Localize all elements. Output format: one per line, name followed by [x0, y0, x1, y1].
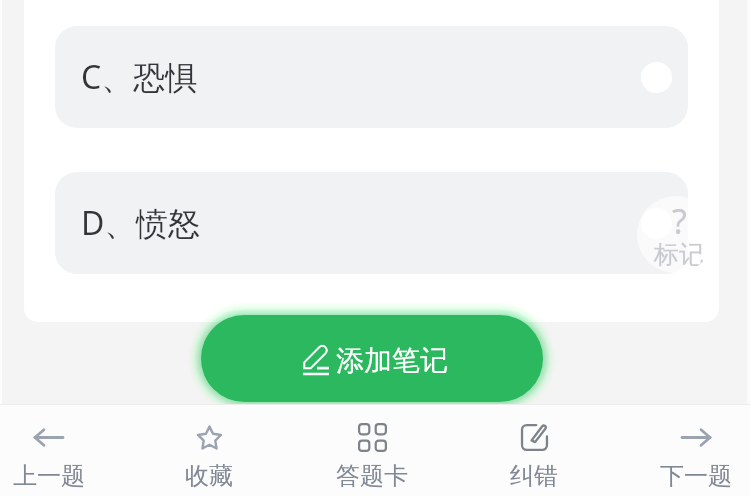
staticText: D、愤怒	[81, 201, 201, 245]
staticText: 纠错	[510, 461, 558, 491]
button[interactable]: 下一题	[641, 405, 750, 496]
button[interactable]: 添加笔记	[201, 315, 543, 402]
staticText: 标记	[654, 239, 704, 270]
button[interactable]: 标记	[637, 196, 714, 273]
staticText: 答题卡	[336, 461, 408, 491]
staticText: ?	[672, 198, 687, 236]
button[interactable]: 收藏	[154, 405, 264, 496]
button[interactable]: D、愤怒	[55, 172, 688, 274]
button[interactable]: 答题卡	[317, 405, 427, 496]
button[interactable]: 上一题	[0, 405, 104, 496]
button[interactable]: 纠错	[479, 405, 589, 496]
staticText: 上一题	[13, 461, 85, 491]
staticText: C、恐惧	[81, 55, 198, 99]
staticText: 收藏	[185, 461, 233, 491]
button[interactable]: C、恐惧	[55, 26, 688, 128]
staticText: 下一题	[660, 461, 732, 491]
staticText: 添加笔记	[336, 343, 448, 378]
